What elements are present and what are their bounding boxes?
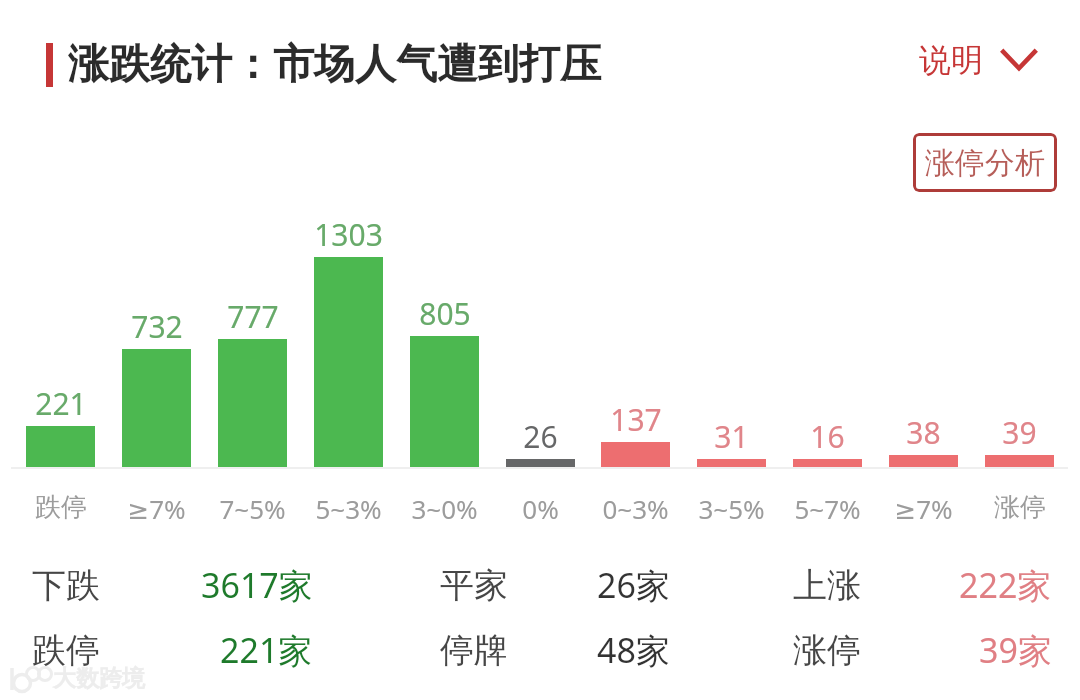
staticText: 平家 [440, 564, 508, 607]
button[interactable]: 涨停分析 [913, 133, 1057, 192]
staticText: 732 [131, 306, 183, 340]
staticText: 39家 [979, 627, 1052, 673]
staticText: 跌停 [35, 491, 87, 523]
button[interactable]: 下跌 [20, 559, 325, 611]
other: 展开说明 [1001, 49, 1037, 71]
staticText: 3~5% [698, 491, 765, 523]
staticText: 涨停 [994, 491, 1046, 523]
staticText: ≥7% [127, 491, 186, 523]
staticText: 805 [419, 293, 471, 327]
button[interactable]: 停牌 [428, 624, 682, 676]
staticText: 上涨 [793, 564, 861, 607]
button[interactable] [780, 210, 875, 523]
staticText: 跌停 [32, 629, 100, 672]
staticText: 涨停分析 [925, 144, 1045, 182]
staticText: 31 [714, 416, 749, 450]
button[interactable]: 说明 [919, 38, 1037, 82]
staticText: 下跌 [32, 564, 100, 607]
staticText: 3617家 [201, 562, 313, 608]
staticText: 137 [610, 399, 662, 433]
staticText: 221 [35, 383, 87, 417]
staticText: 3~0% [411, 491, 478, 523]
staticText: 说明 [919, 40, 983, 80]
staticText: 5~7% [794, 491, 861, 523]
staticText: 16 [810, 416, 845, 450]
button[interactable] [972, 210, 1067, 523]
button[interactable]: 跌停 [20, 624, 325, 676]
staticText: 38 [906, 412, 941, 446]
staticText: 大数跨境 [53, 664, 145, 693]
button[interactable] [493, 210, 588, 523]
staticText: ≥7% [894, 491, 953, 523]
button[interactable] [684, 210, 779, 523]
staticText: 39 [1002, 412, 1037, 446]
button[interactable]: 上涨 [781, 559, 1064, 611]
button[interactable] [588, 210, 683, 523]
staticText: 停牌 [440, 629, 508, 672]
staticText: 0% [522, 491, 559, 523]
staticText: 26 [523, 416, 558, 450]
staticText: 1303 [314, 214, 383, 248]
staticText: 涨跌统计：市场人气遭到打压 [68, 39, 601, 91]
button[interactable]: 平家 [428, 559, 682, 611]
staticText: 0~3% [602, 491, 669, 523]
staticText: 777 [227, 296, 279, 330]
button[interactable] [301, 210, 396, 523]
button[interactable] [13, 210, 108, 523]
button[interactable] [205, 210, 300, 523]
button[interactable]: 涨跌统计：市场人气遭到打压 [46, 38, 601, 92]
staticText: 26家 [597, 562, 670, 608]
staticText: 221家 [220, 627, 313, 673]
button[interactable] [109, 210, 204, 523]
staticText: 222家 [959, 562, 1052, 608]
button[interactable] [397, 210, 492, 523]
staticText: 7~5% [219, 491, 286, 523]
button[interactable]: 涨停 [781, 624, 1064, 676]
staticText: 48家 [597, 627, 670, 673]
button[interactable] [876, 210, 971, 523]
staticText: 涨停 [793, 629, 861, 672]
staticText: 5~3% [315, 491, 382, 523]
